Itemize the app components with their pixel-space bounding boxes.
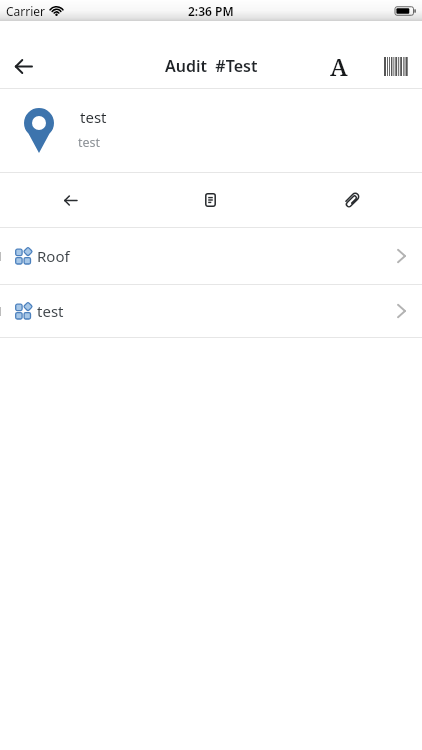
button[interactable] <box>281 173 422 227</box>
button[interactable]: Roof <box>0 228 422 284</box>
staticText: test <box>78 134 101 151</box>
button[interactable] <box>0 173 140 227</box>
button[interactable] <box>140 173 281 227</box>
staticText: 2:36 PM <box>188 3 234 19</box>
button[interactable]: test <box>0 285 422 337</box>
staticText: Carrier <box>6 3 46 19</box>
staticText: test <box>37 301 64 321</box>
button[interactable]: A <box>322 49 356 83</box>
staticText: test <box>80 107 107 127</box>
staticText: Roof <box>37 246 70 266</box>
button[interactable]: test <box>0 89 422 172</box>
button[interactable] <box>6 49 40 83</box>
staticText: A <box>330 50 348 83</box>
button[interactable] <box>381 49 409 83</box>
staticText: Audit #Test <box>165 55 258 77</box>
